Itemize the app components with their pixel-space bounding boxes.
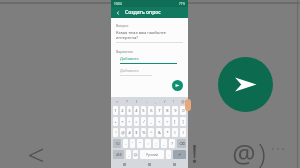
button[interactable]: Enter [173,150,186,159]
button[interactable]: Recents [162,160,187,168]
button[interactable]: Какая тема вам наиболее интересна? [116,30,183,43]
staticText: + [114,119,117,124]
staticText: 8 [166,108,169,113]
staticText: = [135,119,138,124]
staticText: , [155,99,157,104]
staticText: Варианты [116,49,133,54]
button[interactable]: # [127,128,132,137]
button[interactable]: 9 [172,106,178,115]
staticText: 1/2 [115,142,120,146]
button[interactable]: * [164,128,170,137]
button[interactable]: АБВ [113,150,124,159]
button[interactable]: = [134,117,139,126]
button[interactable]: 6 [148,106,154,115]
staticText: < [116,99,119,104]
button[interactable]: 4 [134,106,139,115]
staticText: - [125,141,127,146]
button[interactable]: [ [172,117,178,126]
staticText: Русский [146,153,158,157]
staticText: 71% [179,2,185,6]
button[interactable]: ) [132,98,142,105]
button[interactable]: 2 [120,106,125,115]
button[interactable]: " [137,139,143,148]
button[interactable]: ÷ [127,117,132,126]
staticText: ÷ [128,119,131,124]
button[interactable]: _ [148,117,154,126]
staticText: ↵ [178,152,182,157]
button[interactable]: , [151,98,160,105]
staticText: ] [182,119,184,124]
staticText: ' [132,141,133,146]
staticText: < [158,119,161,124]
staticText: ☺ [133,152,138,157]
button[interactable]: 5 [141,106,146,115]
button[interactable]: $ [134,128,139,137]
button[interactable]: 8 [164,106,170,115]
button[interactable]: ' [130,139,135,148]
button[interactable]: Send [218,57,273,112]
staticText: ! [173,99,175,104]
button[interactable]: , [161,139,167,148]
button[interactable]: ^ [148,128,154,137]
button[interactable]: Русский [140,150,164,159]
button[interactable]: @ [120,128,125,137]
staticText: 5 [142,108,145,113]
staticText: . [168,152,170,157]
button[interactable]: 0 [180,106,186,115]
button[interactable]: ? [169,139,175,148]
staticText: : [147,141,149,146]
button[interactable]: ? [122,98,132,105]
button[interactable]: + [113,117,118,126]
button[interactable]: < [156,117,162,126]
button[interactable]: ; [153,139,159,148]
button[interactable]: Create poll [172,80,183,91]
button[interactable]: > [164,117,170,126]
button[interactable]: / [160,98,169,105]
button[interactable]: Добавить [120,56,183,64]
button[interactable]: 7 [156,106,162,115]
button[interactable]: 3 [127,106,132,115]
staticText: Добавить [120,68,139,73]
button[interactable]: ( [172,128,178,137]
button[interactable]: < [112,98,122,105]
button[interactable]: @ [178,98,187,105]
staticText: Вопрос [116,23,129,28]
button[interactable]: × [120,117,125,126]
staticText: , [163,141,165,146]
button[interactable]: Emoji [133,150,138,159]
staticText: ) [258,134,266,168]
staticText: ? [126,99,128,104]
button[interactable]: - [142,98,151,105]
button[interactable]: Home [137,160,162,168]
button[interactable]: Backspace [177,139,186,148]
button[interactable]: - [123,139,128,148]
staticText: $ [135,130,138,135]
button[interactable]: Back [114,9,122,17]
button[interactable]: / [141,117,146,126]
button[interactable]: % [141,128,146,137]
staticText: × [121,119,124,124]
staticText: Какая тема вам наиболее интересна? [116,30,183,40]
staticText: / [143,119,145,124]
staticText: 9 [174,108,177,113]
button[interactable]: . [166,150,171,159]
staticText: % [142,130,146,135]
button[interactable]: , [126,150,131,159]
button[interactable]: & [156,128,162,137]
button[interactable]: 1 [113,106,118,115]
staticText: " [139,141,141,146]
button[interactable]: ] [180,117,186,126]
staticText: ; [155,141,157,146]
button[interactable]: Добавить [120,68,183,76]
button[interactable]: : [145,139,151,148]
staticText: Создать опрос [125,9,161,16]
button[interactable]: Back [112,160,137,168]
button[interactable]: ) [180,128,186,137]
staticText: - [146,99,148,104]
button[interactable]: ! [169,98,178,105]
staticText: 4 [135,108,138,113]
button[interactable]: 1/2 [113,139,121,148]
staticText: > [166,119,169,124]
staticText: @ [181,99,185,104]
button[interactable]: ! [113,128,118,137]
